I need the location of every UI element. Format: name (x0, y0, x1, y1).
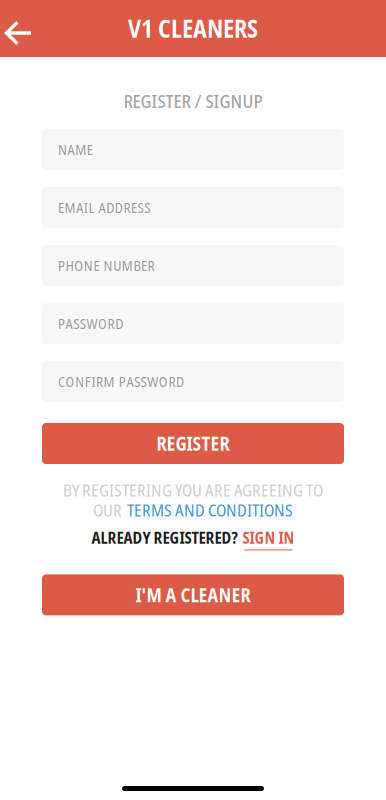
staticText: OUR (93, 499, 122, 521)
button[interactable]: PHONE NUMBER (42, 245, 344, 286)
button[interactable]: Back (0, 0, 46, 57)
staticText: NAME (58, 140, 93, 159)
staticText: PHONE NUMBER (58, 256, 155, 275)
button[interactable]: TERMS AND CONDITIONS (127, 504, 293, 516)
staticText: REGISTER (156, 431, 229, 456)
staticText: TERMS AND CONDITIONS (127, 499, 293, 521)
staticText: CONFIRM PASSWORD (58, 372, 184, 391)
button[interactable]: PASSWORD (42, 303, 344, 344)
button[interactable]: EMAIL ADDRESS (42, 187, 344, 228)
staticText: V1 CLEANERS (128, 12, 258, 45)
button[interactable]: SIGN IN (242, 527, 294, 550)
staticText: I'M A CLEANER (135, 582, 250, 608)
staticText: REGISTER / SIGNUP (123, 89, 262, 113)
staticText: BY REGISTERING YOU ARE AGREEING TO (63, 479, 323, 501)
button[interactable]: I'M A CLEANER (42, 574, 344, 615)
button[interactable]: NAME (42, 129, 344, 170)
staticText: PASSWORD (58, 314, 123, 333)
staticText: EMAIL ADDRESS (58, 198, 150, 217)
button[interactable]: CONFIRM PASSWORD (42, 361, 344, 402)
staticText: SIGN IN (242, 527, 294, 548)
button[interactable]: REGISTER (42, 423, 344, 464)
staticText: ALREADY REGISTERED? (91, 527, 237, 548)
